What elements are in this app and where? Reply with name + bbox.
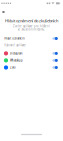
staticText: Zalo (10, 66, 16, 69)
button[interactable]: Back (0, 8, 8, 16)
staticText: ve zkušebním režimu. (17, 28, 45, 31)
staticText: Vybrané aplikace (4, 43, 26, 47)
button[interactable]: Hlásit oznámení (0, 35, 63, 42)
staticText: Zvolte aplikace pro hlášení (13, 24, 50, 28)
button[interactable]: WhatsApp (0, 57, 63, 64)
staticText: Hlásit oznámení do zkušebních (5, 18, 58, 23)
staticText: Hlásit oznámení (4, 37, 25, 40)
button[interactable]: Zalo (0, 64, 63, 71)
staticText: Instagram (10, 52, 22, 55)
button[interactable]: Instagram (0, 50, 63, 57)
staticText: WhatsApp (10, 59, 23, 62)
